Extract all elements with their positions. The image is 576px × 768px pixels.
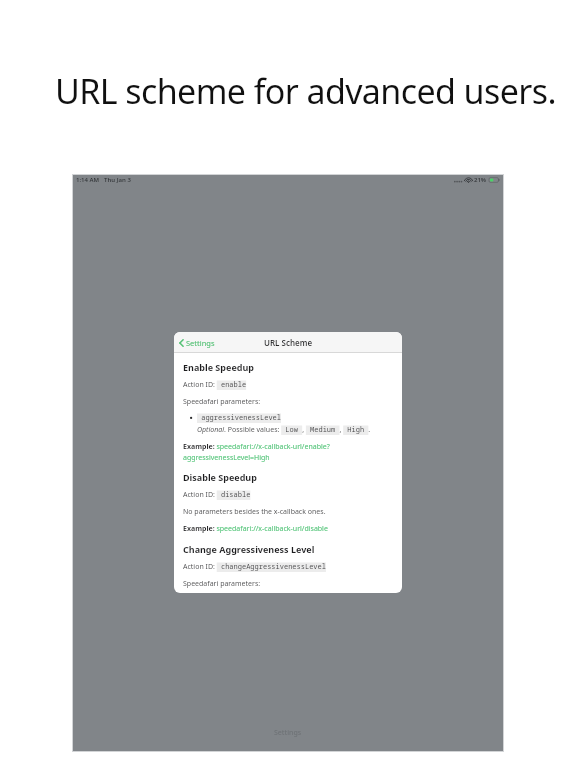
staticText: No parameters besides the x-callback one… [183, 507, 326, 517]
staticText: URL Scheme [264, 337, 313, 348]
button[interactable]: Settings [174, 335, 221, 351]
staticText: URL scheme for advanced users. [55, 68, 556, 114]
staticText: Example: speedafari://x-callback-url/dis… [183, 524, 328, 534]
staticText: aggressivenessLevel [197, 413, 286, 423]
button[interactable]: Example: speedafari://x-callback-url/dis… [183, 524, 328, 534]
staticText: Example: speedafari://x-callback-url/ena… [183, 442, 393, 462]
staticText: Enable Speedup [183, 361, 254, 373]
staticText: Speedafari parameters: [183, 397, 261, 407]
staticText: Speedafari parameters: [183, 579, 261, 589]
staticText: Action ID: enable [183, 380, 251, 390]
staticText: Optional. Possible values: Low , Medium … [197, 425, 371, 435]
staticText: Thu Jan 3 [104, 176, 131, 184]
staticText: Action ID: disable [183, 490, 255, 500]
staticText: 21% [474, 176, 487, 184]
staticText: Disable Speedup [183, 471, 257, 483]
staticText: 1:14 AM [76, 176, 100, 184]
staticText: Change Aggressiveness Level [183, 543, 315, 555]
staticText: Action ID: changeAggressivenessLevel [183, 562, 331, 572]
button[interactable]: Example: speedafari://x-callback-url/ena… [183, 442, 393, 462]
staticText: Settings [186, 338, 215, 348]
staticText: Settings [274, 728, 302, 738]
